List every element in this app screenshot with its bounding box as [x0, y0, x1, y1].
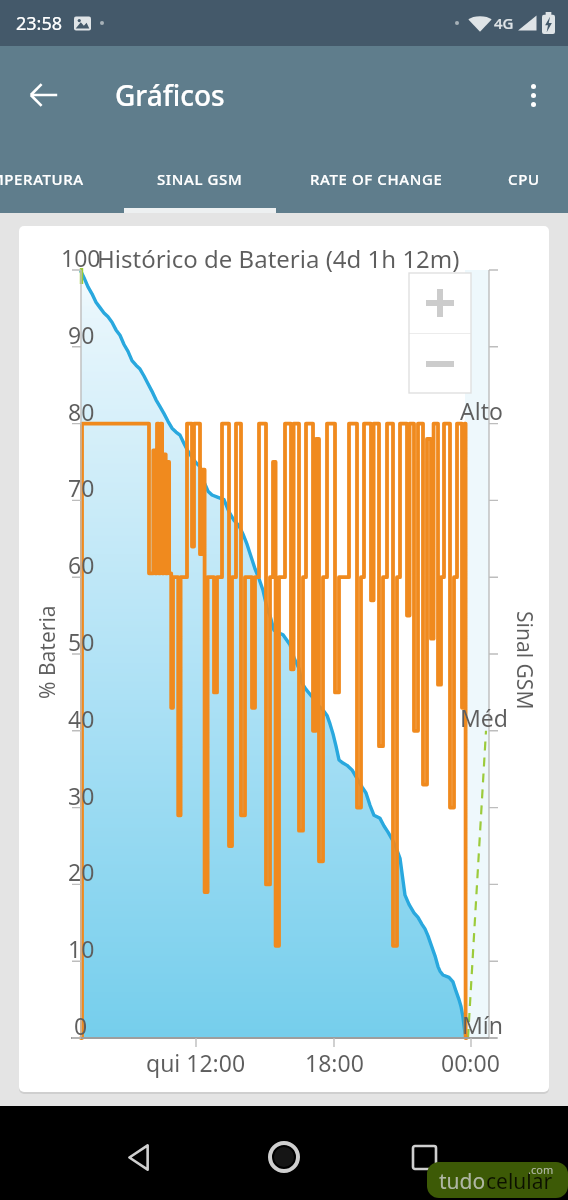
- staticText: 0: [74, 1010, 88, 1041]
- button[interactable]: SINAL GSM: [124, 147, 276, 211]
- staticText: .com: [528, 1162, 554, 1177]
- staticText: tudo: [439, 1167, 486, 1196]
- staticText: 20: [68, 856, 95, 887]
- staticText: CPU: [508, 169, 540, 189]
- staticText: TEMPERATURA: [0, 169, 84, 189]
- staticText: Mín: [462, 1009, 504, 1040]
- staticText: Sinal GSM: [510, 611, 539, 710]
- staticText: 30: [68, 780, 95, 811]
- staticText: 90: [68, 319, 95, 350]
- staticText: qui 12:00: [146, 1047, 246, 1078]
- staticText: 40: [68, 703, 95, 734]
- staticText: 23:58: [16, 11, 63, 36]
- button[interactable]: Back: [111, 1129, 167, 1185]
- staticText: Méd: [460, 702, 508, 733]
- staticText: 10: [68, 933, 95, 964]
- staticText: 4G: [494, 13, 514, 33]
- staticText: 100: [61, 242, 101, 273]
- staticText: RATE OF CHANGE: [310, 169, 443, 189]
- button[interactable]: Back: [16, 67, 72, 123]
- button[interactable]: Home: [256, 1129, 312, 1185]
- staticText: Histórico de Bateria (4d 1h 12m): [97, 242, 460, 275]
- button[interactable]: TEMPERATURA: [0, 147, 114, 211]
- button[interactable]: More options: [508, 70, 558, 120]
- staticText: 60: [68, 549, 95, 580]
- staticText: 00:00: [441, 1047, 500, 1078]
- button[interactable]: CPU: [466, 147, 568, 211]
- staticText: 50: [68, 626, 95, 657]
- button[interactable]: Zoom in: [409, 273, 471, 333]
- staticText: celular: [486, 1167, 553, 1196]
- staticText: % Bateria: [33, 605, 62, 699]
- staticText: SINAL GSM: [157, 169, 243, 189]
- button[interactable]: Recents: [396, 1129, 452, 1185]
- button[interactable]: RATE OF CHANGE: [276, 147, 476, 211]
- staticText: Alto: [460, 395, 503, 426]
- staticText: 80: [68, 396, 95, 427]
- staticText: 18:00: [305, 1047, 364, 1078]
- staticText: Gráficos: [115, 76, 225, 114]
- staticText: 70: [68, 472, 95, 503]
- button[interactable]: Zoom out: [409, 334, 471, 393]
